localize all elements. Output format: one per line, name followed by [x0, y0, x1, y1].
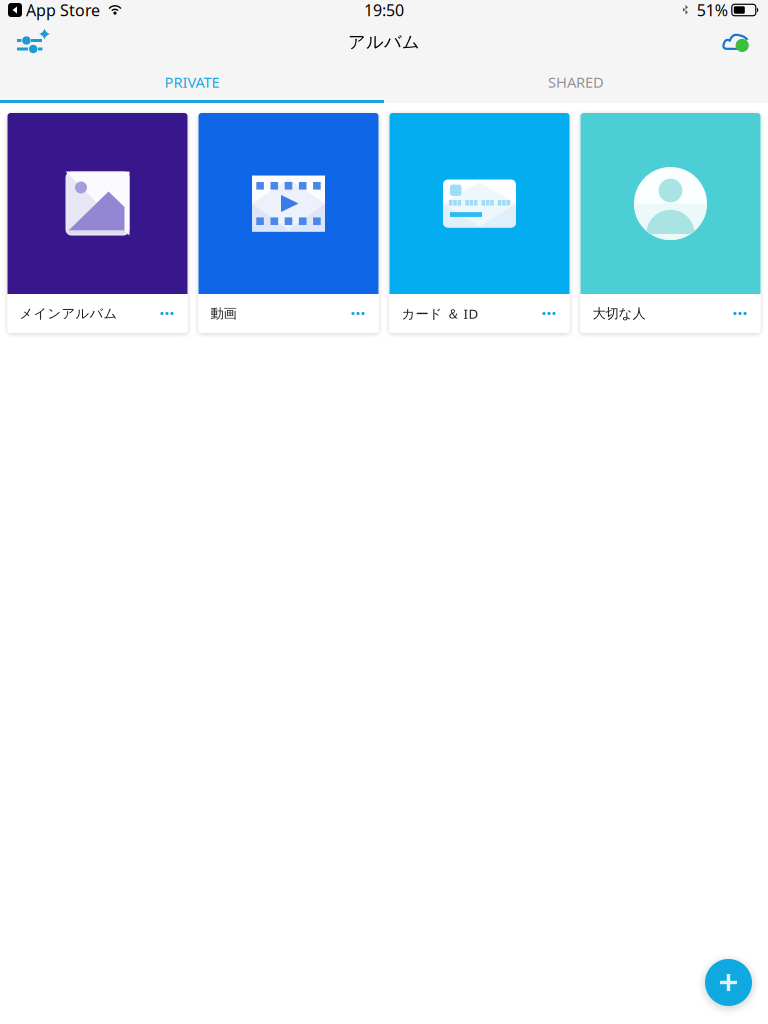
staticText: カード ＆ ID — [401, 305, 478, 322]
button[interactable]: Filters — [8, 20, 64, 64]
staticText: PRIVATE — [164, 72, 219, 92]
staticText: 19:50 — [364, 0, 404, 21]
staticText: メインアルバム — [19, 305, 117, 322]
button[interactable]: iCloud status — [710, 20, 760, 64]
staticText: 動画 — [210, 305, 236, 322]
button[interactable]: Add album — [705, 959, 752, 1006]
staticText: 51% — [697, 0, 728, 21]
staticText: アルバム — [348, 31, 420, 53]
button[interactable]: SHARED — [384, 64, 768, 103]
button[interactable]: PRIVATE — [0, 64, 384, 103]
staticText: App Store — [22, 0, 100, 21]
button[interactable]: 動画 — [198, 113, 378, 333]
staticText: 大切な人 — [592, 305, 645, 322]
button[interactable]: カード ＆ ID — [389, 113, 569, 333]
button[interactable]: 大切な人 — [580, 113, 760, 333]
button[interactable]: メインアルバム — [7, 113, 187, 333]
staticText: SHARED — [548, 72, 604, 92]
